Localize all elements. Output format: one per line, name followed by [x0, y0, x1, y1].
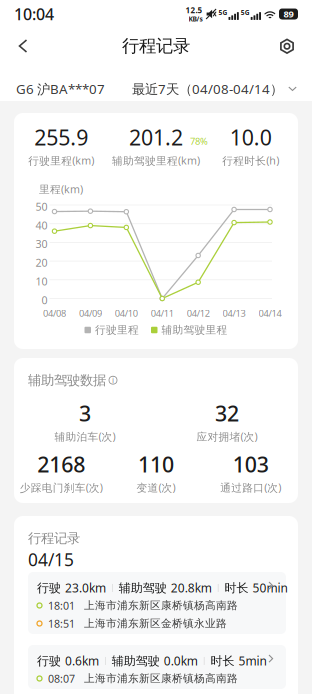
staticText: 04/08: [43, 307, 66, 319]
button[interactable]: G6 沪BA***07: [12, 72, 109, 106]
staticText: 20.8km: [171, 580, 212, 596]
staticText: 50: [35, 199, 47, 214]
staticText: 最近7天（04/08-04/14）: [132, 80, 283, 98]
staticText: 少踩电门刹车(次): [20, 480, 103, 494]
staticText: 5min: [239, 653, 267, 669]
staticText: 04/13: [223, 307, 246, 319]
staticText: 2168: [37, 450, 85, 478]
staticText: 20: [35, 256, 47, 270]
staticText: 行程时长(h): [222, 153, 279, 167]
staticText: 辅助驾驶: [112, 654, 164, 668]
staticText: 辅助驾驶数据: [28, 372, 106, 388]
staticText: 上海市浦东新区康桥镇杨高南路: [84, 599, 238, 612]
staticText: 10.0: [230, 123, 272, 151]
staticText: 行程记录: [122, 35, 190, 57]
staticText: 应对拥堵(次): [196, 429, 257, 443]
button[interactable]: Settings: [269, 28, 305, 64]
staticText: 18:01: [48, 598, 75, 613]
staticText: 时长: [225, 581, 253, 595]
staticText: 04/10: [115, 307, 138, 319]
staticText: 时长: [211, 654, 239, 668]
staticText: 08:07: [48, 671, 75, 686]
button[interactable]: 行驶: [28, 645, 286, 689]
staticText: i: [112, 375, 114, 385]
staticText: 255.9: [34, 123, 88, 151]
staticText: 10: [35, 274, 47, 288]
staticText: 通过路口(次): [220, 480, 281, 494]
button[interactable]: 行驶: [28, 572, 286, 634]
staticText: 行驶: [37, 581, 65, 595]
staticText: 23.0km: [65, 580, 106, 596]
staticText: 201.2: [129, 123, 183, 151]
staticText: 行驶: [37, 654, 65, 668]
staticText: 18:51: [48, 616, 75, 631]
staticText: 变道(次): [136, 480, 175, 494]
staticText: 40: [35, 218, 47, 232]
button[interactable]: 最近7天（04/08-04/14）: [128, 72, 301, 106]
staticText: 5G: [219, 8, 228, 17]
staticText: 50min: [253, 580, 288, 596]
staticText: 上海市浦东新区金桥镇永业路: [84, 617, 227, 630]
staticText: 行驶里程: [95, 323, 139, 336]
staticText: 上海市浦东新区康桥镇杨高南路: [84, 672, 238, 685]
staticText: 行程记录: [28, 530, 80, 546]
staticText: 32: [215, 399, 239, 427]
staticText: 103: [233, 450, 269, 478]
staticText: 30: [35, 237, 47, 251]
staticText: 辅助驾驶: [119, 581, 171, 595]
staticText: 5G: [241, 8, 250, 17]
staticText: 12.5: [186, 5, 203, 15]
staticText: 110: [138, 450, 174, 478]
staticText: 04/09: [79, 307, 102, 319]
staticText: 04/11: [151, 307, 174, 319]
staticText: 辅助驾驶里程: [161, 323, 227, 336]
staticText: 0.6km: [65, 653, 99, 669]
staticText: G6 沪BA***07: [16, 80, 105, 98]
staticText: 04/12: [187, 307, 210, 319]
staticText: 04/15: [28, 548, 74, 571]
staticText: KB/s: [189, 14, 203, 23]
staticText: 辅助驾驶里程(km): [112, 153, 200, 167]
staticText: 0: [41, 293, 47, 307]
staticText: 里程(km): [39, 182, 83, 196]
staticText: 辅助泊车(次): [54, 429, 115, 443]
staticText: 3: [79, 399, 91, 427]
staticText: 04/14: [258, 307, 281, 319]
staticText: 行驶里程(km): [28, 153, 94, 167]
staticText: 78%: [190, 135, 208, 147]
staticText: 10:04: [14, 3, 54, 25]
staticText: 89: [283, 8, 293, 20]
staticText: 0.0km: [164, 653, 198, 669]
button[interactable]: Back: [5, 28, 41, 64]
